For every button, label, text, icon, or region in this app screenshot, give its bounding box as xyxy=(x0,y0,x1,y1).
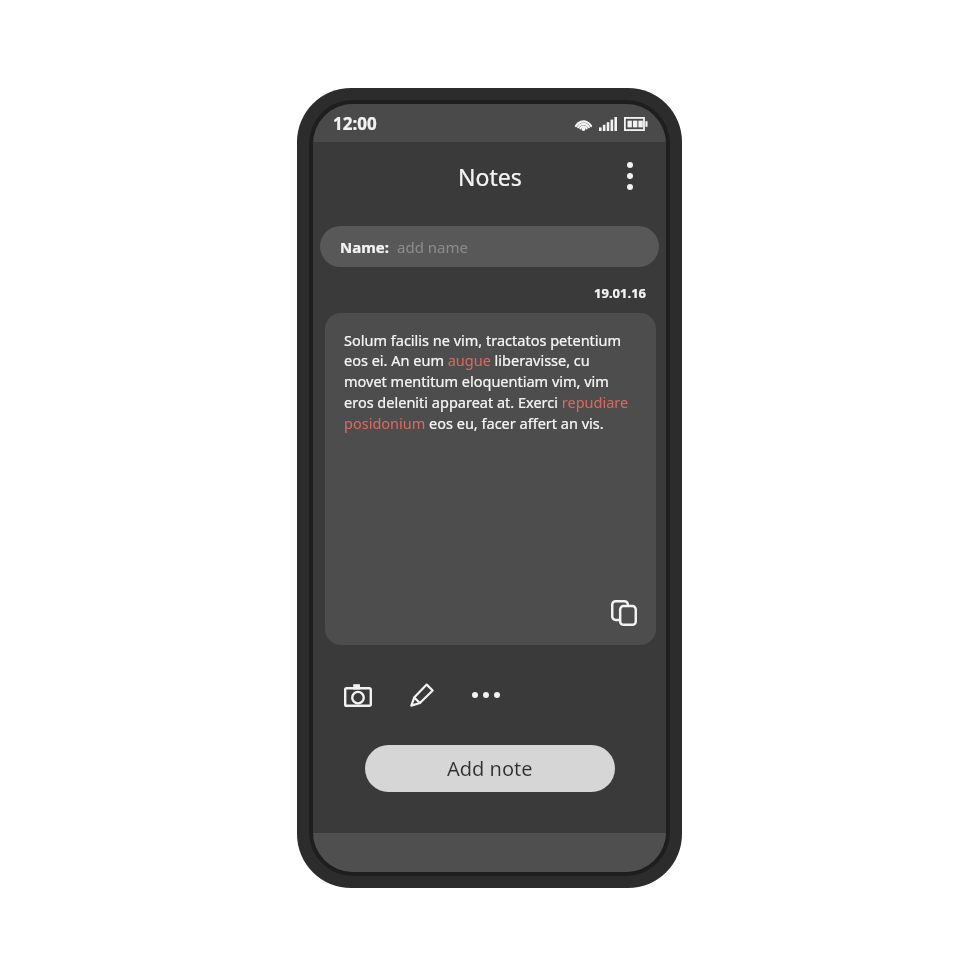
button[interactable]: More actions xyxy=(465,674,507,716)
button[interactable]: Name: xyxy=(320,226,659,267)
staticText: Solum facilis ne vim, tractatos petentiu… xyxy=(344,330,636,434)
staticText: Add note xyxy=(447,755,533,782)
staticText: Notes xyxy=(458,161,522,192)
staticText: add name xyxy=(397,237,468,257)
staticText: 19.01.16 xyxy=(313,284,646,302)
button[interactable]: Copy note xyxy=(609,598,639,628)
button[interactable]: Edit note xyxy=(401,674,443,716)
button[interactable]: Solum facilis ne vim, tractatos petentiu… xyxy=(325,313,656,645)
button[interactable]: Add note xyxy=(365,745,615,792)
staticText: Name: xyxy=(340,237,389,257)
button[interactable]: Take photo xyxy=(337,674,379,716)
staticText: 12:00 xyxy=(333,112,377,135)
button[interactable]: More options xyxy=(614,160,646,192)
